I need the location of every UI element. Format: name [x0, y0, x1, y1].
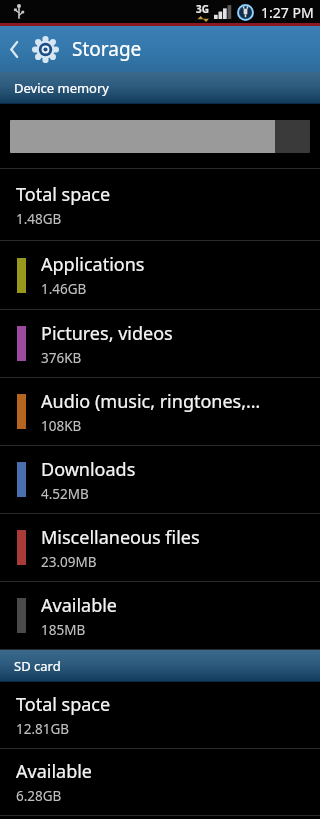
staticText: 185MB	[41, 621, 86, 639]
staticText: 1.46GB	[41, 280, 87, 298]
staticText: Miscellaneous files	[41, 525, 200, 550]
button[interactable]: Audio (music, ringtones,…	[0, 378, 320, 445]
button[interactable]: Total space	[0, 682, 320, 748]
button[interactable]: Downloads	[0, 446, 320, 513]
staticText: 376KB	[41, 349, 82, 367]
staticText: 12.81GB	[16, 720, 70, 738]
button[interactable]: Back	[0, 26, 28, 72]
staticText: 6.28GB	[16, 787, 62, 805]
button[interactable]: Pictures, videos	[0, 310, 320, 377]
staticText: Total space	[16, 692, 111, 717]
button[interactable]: Applications	[0, 241, 320, 309]
staticText: 23.09MB	[41, 553, 97, 571]
staticText: 108KB	[41, 417, 82, 435]
staticText: Pictures, videos	[41, 321, 173, 346]
staticText: Storage	[72, 36, 142, 62]
staticText: Audio (music, ringtones,…	[41, 389, 261, 414]
staticText: 4.52MB	[41, 485, 89, 503]
staticText: Available	[16, 759, 92, 784]
staticText: SD card	[14, 657, 61, 675]
button[interactable]: Available	[0, 582, 320, 649]
staticText: Applications	[41, 252, 145, 277]
staticText: Device memory	[14, 79, 109, 97]
button[interactable]: Miscellaneous files	[0, 514, 320, 581]
staticText: 3G	[196, 2, 209, 16]
staticText: 1:27 PM	[261, 3, 314, 22]
staticText: 1.48GB	[16, 210, 62, 228]
staticText: Total space	[16, 182, 111, 207]
button[interactable]: Total space	[0, 169, 320, 240]
staticText: Downloads	[41, 457, 136, 482]
staticText: Available	[41, 593, 117, 618]
button[interactable]: Available	[0, 749, 320, 815]
